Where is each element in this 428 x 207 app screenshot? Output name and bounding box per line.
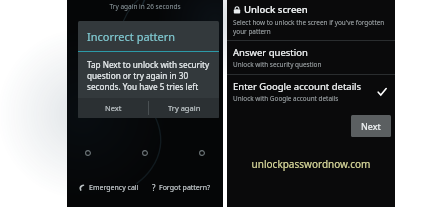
staticText: Answer question	[233, 46, 308, 59]
staticText: Emergency call	[89, 183, 139, 193]
staticText: Tap Next to unlock with security questio…	[87, 59, 211, 92]
button[interactable]: Try again	[149, 98, 219, 118]
staticText: Select how to unlock the screen if you'v…	[233, 18, 389, 36]
staticText: Next	[361, 120, 381, 132]
staticText: ?	[152, 182, 156, 193]
button[interactable]: Next	[78, 98, 148, 118]
button[interactable]: ?	[150, 182, 213, 193]
staticText: Try again	[168, 103, 201, 113]
button[interactable]: Enter Google account details	[227, 75, 395, 108]
staticText: Unlock screen	[244, 3, 308, 16]
staticText: Unlock with Google account details	[233, 94, 339, 103]
staticText: Next	[105, 103, 122, 113]
button[interactable]: Next	[351, 115, 391, 137]
staticText: Incorrect pattern	[87, 29, 176, 44]
staticText: Enter Google account details	[233, 80, 362, 93]
button[interactable]: Emergency call	[78, 183, 141, 193]
staticText: Unlock with security question	[233, 60, 322, 69]
button[interactable]: Answer question	[227, 41, 395, 74]
staticText: Forgot pattern?	[159, 183, 211, 193]
staticText: Try again in 26 seconds	[109, 2, 181, 11]
staticText: unlockpasswordnow.com	[227, 157, 395, 171]
